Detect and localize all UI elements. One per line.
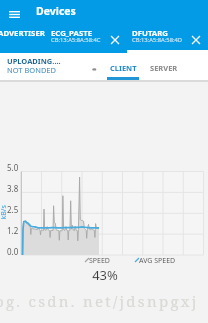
staticText: SPEED: [89, 256, 110, 266]
staticText: og. csdn. net/jdsnpgxj: [0, 291, 199, 311]
staticText: CB:13:A5:8A:58:4D: [132, 36, 183, 44]
staticText: CB:13:A5:8A:58:4C: [51, 36, 101, 44]
button[interactable]: SERVER: [144, 54, 184, 81]
staticText: DFUTARG: [132, 28, 168, 39]
staticText: ADVERTISER: [0, 28, 45, 39]
staticText: kB/s: [0, 204, 8, 219]
staticText: 3.8: [7, 183, 19, 194]
button[interactable]: Disconnect device: [108, 33, 122, 47]
staticText: ECG_PASTE: [51, 28, 93, 39]
staticText: NOT BONDED: [7, 65, 57, 75]
staticText: AVG SPEED: [139, 256, 176, 266]
button[interactable]: ADVERTISER: [0, 26, 72, 53]
staticText: 5.0: [7, 162, 19, 173]
button[interactable]: CLIENT: [105, 54, 141, 81]
staticText: CLIENT: [110, 63, 137, 73]
staticText: UPLOADING....: [7, 56, 61, 66]
staticText: 2.5: [7, 204, 19, 215]
staticText: 0.0: [7, 246, 19, 257]
button[interactable]: Disconnect device: [189, 33, 203, 47]
button[interactable]: DFUTARG: [125, 26, 206, 53]
staticText: 43%: [92, 266, 118, 284]
staticText: 1.2: [7, 225, 19, 236]
staticText: Devices: [36, 4, 76, 18]
button[interactable]: ECG_PASTE: [44, 26, 125, 53]
staticText: SERVER: [150, 63, 178, 73]
button[interactable]: Open navigation menu: [5, 5, 24, 24]
